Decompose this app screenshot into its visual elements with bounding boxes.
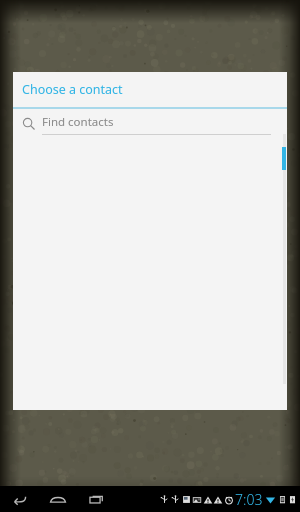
button[interactable]: Search bbox=[13, 109, 287, 139]
button[interactable]: Recent apps bbox=[86, 488, 108, 510]
button[interactable]: Home bbox=[47, 488, 69, 510]
staticText: Choose a contact bbox=[22, 81, 123, 98]
other: Search bbox=[22, 117, 36, 131]
button[interactable]: Back bbox=[8, 488, 30, 510]
staticText: Find contacts bbox=[42, 114, 114, 130]
staticText: 7:03 bbox=[235, 490, 263, 509]
